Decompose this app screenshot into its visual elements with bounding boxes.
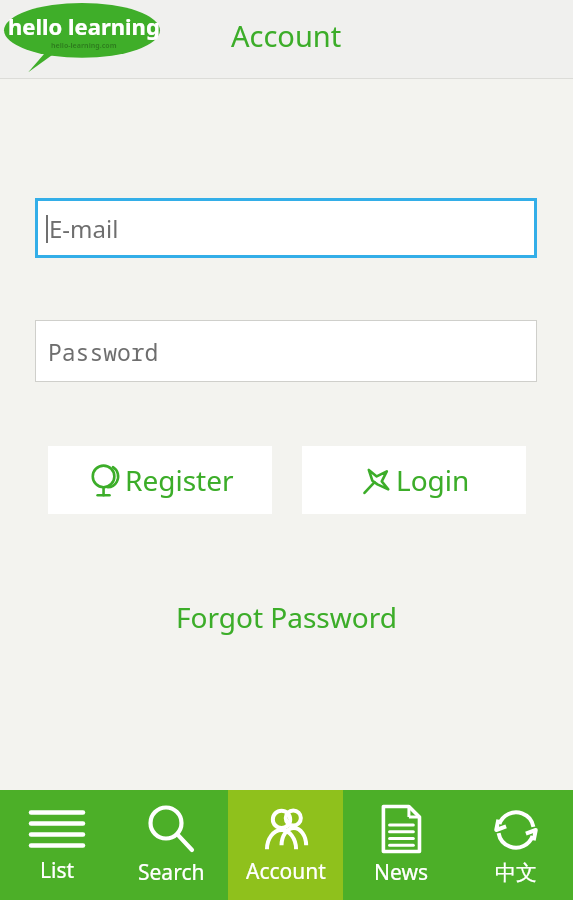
staticText: hello-learning.com [51,41,117,51]
staticText: Account [246,857,326,886]
button[interactable]: List [0,790,114,900]
staticText: Forgot Password [176,598,397,636]
button[interactable]: Account [228,790,343,900]
staticText: List [40,856,75,885]
staticText: Register [125,461,234,499]
button[interactable]: Forgot Password [162,590,411,644]
button[interactable]: Login [302,446,526,514]
button[interactable]: News [343,790,458,900]
staticText: Login [396,461,470,499]
other: hello learning logo [2,1,166,73]
button[interactable]: Search [114,790,228,900]
button[interactable]: Password [35,320,537,382]
staticText: News [374,858,428,887]
button[interactable]: Register [48,446,272,514]
staticText: Password [48,336,159,367]
staticText: Search [138,858,205,887]
button[interactable]: 中文 [458,790,573,900]
staticText: 中文 [495,860,537,886]
button[interactable]: E-mail [35,198,537,258]
staticText: hello learning [8,11,160,41]
staticText: E-mail [49,212,119,245]
staticText: Account [231,16,342,55]
